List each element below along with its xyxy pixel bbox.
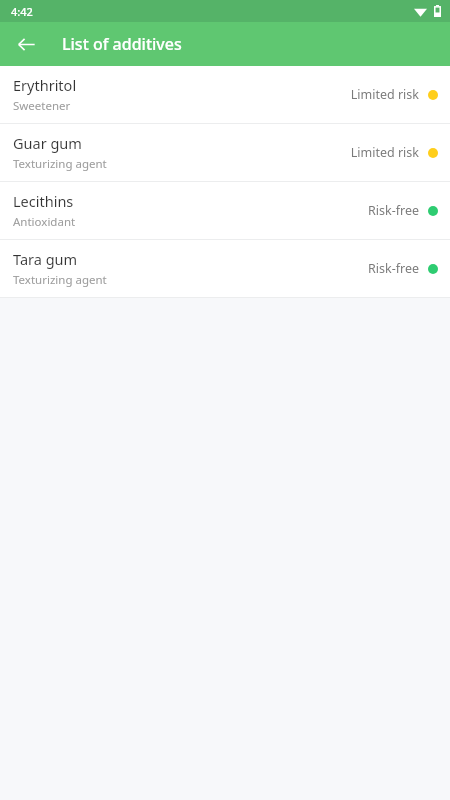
staticText: Risk-free [367, 260, 419, 277]
staticText: 4:42 [11, 4, 33, 19]
staticText: Risk-free [367, 202, 419, 219]
staticText: Antioxidant [13, 214, 76, 230]
staticText: Guar gum [13, 133, 82, 153]
button[interactable]: Tara gum [0, 240, 450, 297]
staticText: Texturizing agent [13, 272, 107, 288]
staticText: Sweetener [13, 98, 71, 114]
staticText: Texturizing agent [13, 156, 107, 172]
button[interactable]: Guar gum [0, 124, 450, 181]
button[interactable]: Erythritol [0, 66, 450, 123]
staticText: Limited risk [350, 144, 419, 161]
staticText: Lecithins [13, 191, 74, 211]
button[interactable]: Back [8, 26, 44, 62]
staticText: Limited risk [350, 86, 419, 103]
staticText: Erythritol [13, 75, 77, 95]
staticText: List of additives [62, 33, 182, 55]
staticText: Tara gum [13, 249, 78, 269]
button[interactable]: Lecithins [0, 182, 450, 239]
